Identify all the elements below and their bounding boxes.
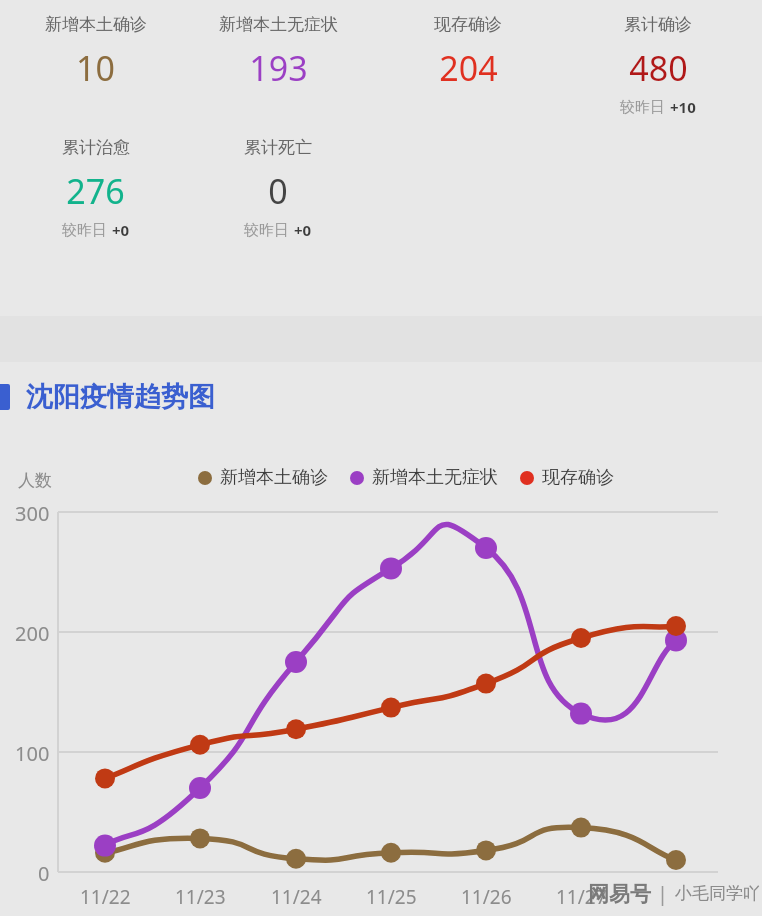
staticText: 较昨日 [620, 98, 665, 117]
button[interactable]: 新增本土无症状 [183, 14, 373, 91]
staticText: +0 [294, 220, 312, 240]
staticText: 累计确诊 [624, 14, 692, 35]
button[interactable]: 累计治愈 [8, 137, 183, 240]
button[interactable]: 新增本土确诊 [8, 14, 183, 91]
staticText: +10 [670, 97, 696, 117]
staticText: 300 [15, 500, 50, 527]
staticText: 11/23 [175, 884, 226, 910]
button[interactable]: 沈阳疫情趋势图 [0, 380, 762, 414]
staticText: 11/22 [80, 884, 131, 910]
staticText: 11/27 [556, 884, 607, 910]
staticText: 193 [249, 45, 308, 91]
staticText: 11/24 [271, 884, 322, 910]
staticText: 新增本土无症状 [219, 14, 338, 35]
staticText: 11/26 [461, 884, 512, 910]
staticText: 现存确诊 [434, 14, 502, 35]
staticText: 100 [15, 740, 50, 767]
staticText: 小毛同学吖 [675, 883, 760, 904]
staticText: +0 [112, 220, 130, 240]
staticText: 204 [439, 45, 498, 91]
staticText: | [657, 880, 669, 907]
staticText: 新增本土确诊 [220, 466, 328, 489]
button[interactable]: 现存确诊 [520, 466, 614, 489]
button[interactable]: 累计确诊 [563, 14, 753, 117]
staticText: 10 [76, 45, 115, 91]
staticText: 累计治愈 [62, 137, 130, 158]
staticText: 276 [66, 168, 125, 214]
staticText: 新增本土无症状 [372, 466, 498, 489]
staticText: 网易号 [588, 881, 651, 907]
button[interactable]: 累计死亡 [183, 137, 373, 240]
staticText: 新增本土确诊 [45, 14, 147, 35]
staticText: 0 [268, 168, 288, 214]
button[interactable]: 现存确诊 [373, 14, 563, 91]
button[interactable]: 新增本土无症状 [350, 466, 498, 489]
staticText: 沈阳疫情趋势图 [26, 380, 215, 414]
staticText: 11/25 [366, 884, 417, 910]
staticText: 0 [38, 860, 50, 887]
staticText: 200 [15, 620, 50, 647]
button[interactable]: 新增本土确诊 [198, 466, 328, 489]
staticText: 较昨日 [244, 221, 289, 240]
staticText: 现存确诊 [542, 466, 614, 489]
staticText: 人数 [18, 470, 52, 491]
staticText: 累计死亡 [244, 137, 312, 158]
staticText: 较昨日 [62, 221, 107, 240]
staticText: 480 [629, 45, 688, 91]
